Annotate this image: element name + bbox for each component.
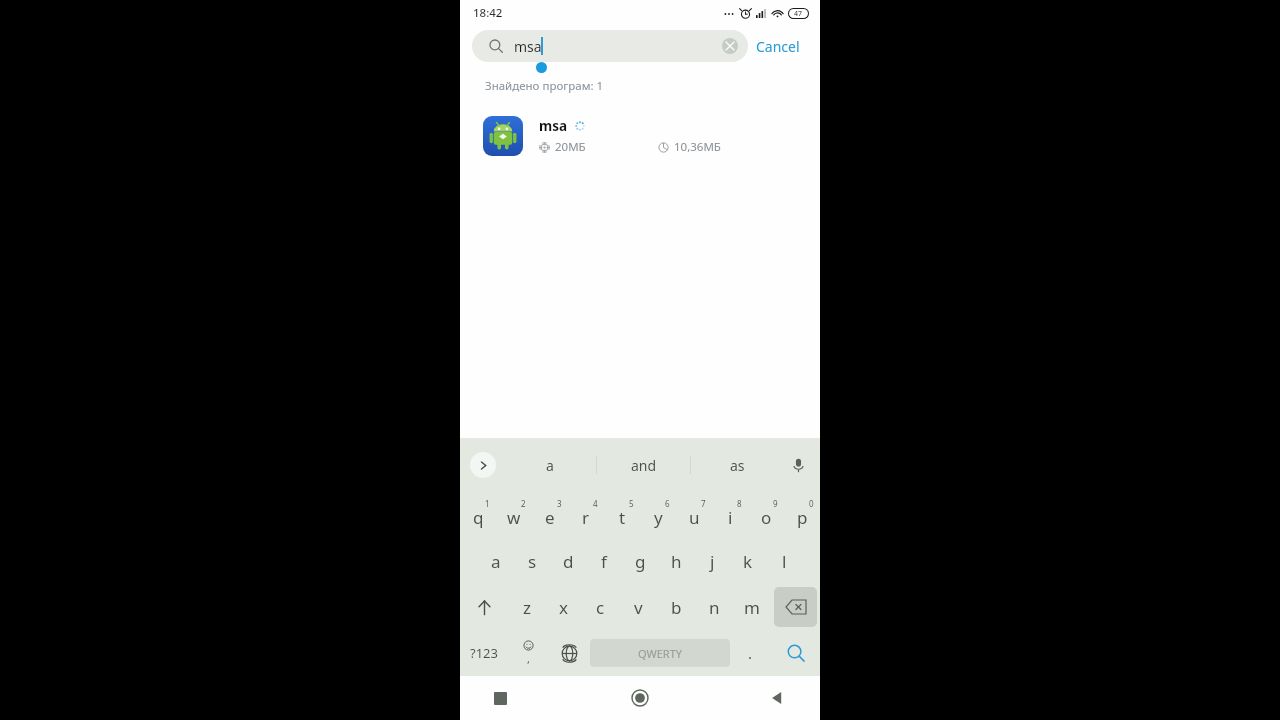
button[interactable]: c bbox=[582, 584, 619, 630]
staticText: a bbox=[491, 550, 501, 573]
button[interactable]: l bbox=[766, 538, 802, 584]
staticText: as bbox=[730, 456, 745, 475]
button[interactable]: msa bbox=[472, 30, 748, 62]
staticText: q bbox=[473, 506, 484, 529]
staticText: 10,36МБ bbox=[674, 139, 721, 155]
staticText: d bbox=[563, 550, 574, 573]
staticText: ?123 bbox=[470, 644, 498, 662]
button[interactable]: g bbox=[622, 538, 658, 584]
staticText: u bbox=[689, 506, 700, 529]
staticText: c bbox=[596, 596, 605, 619]
staticText: f bbox=[601, 550, 607, 573]
staticText: Cancel bbox=[756, 37, 800, 56]
staticText: and bbox=[631, 456, 657, 475]
button[interactable]: k bbox=[730, 538, 766, 584]
staticText: msa bbox=[539, 117, 568, 135]
staticText: a bbox=[546, 456, 554, 475]
staticText: x bbox=[559, 596, 568, 619]
button[interactable]: o bbox=[748, 492, 784, 538]
staticText: 9 bbox=[773, 498, 778, 509]
staticText: 7 bbox=[701, 498, 706, 509]
staticText: 6 bbox=[665, 498, 670, 509]
button[interactable]: . bbox=[730, 630, 771, 676]
button[interactable]: q bbox=[460, 492, 496, 538]
button[interactable]: Home bbox=[580, 676, 700, 720]
button[interactable]: Change language bbox=[549, 630, 590, 676]
button[interactable]: f bbox=[586, 538, 622, 584]
staticText: 18:42 bbox=[473, 5, 503, 21]
staticText: . bbox=[748, 643, 753, 663]
staticText: Знайдено програм: 1 bbox=[485, 78, 604, 94]
button[interactable]: Backspace bbox=[774, 587, 817, 627]
button[interactable]: Clear search bbox=[722, 38, 738, 54]
button[interactable]: n bbox=[695, 584, 733, 630]
staticText: 8 bbox=[737, 498, 742, 509]
button[interactable]: a bbox=[478, 538, 514, 584]
staticText: e bbox=[545, 506, 555, 529]
button[interactable]: s bbox=[514, 538, 550, 584]
staticText: 4 bbox=[593, 498, 598, 509]
staticText: 47 bbox=[794, 9, 803, 18]
button[interactable]: j bbox=[694, 538, 730, 584]
button[interactable]: msa bbox=[460, 110, 820, 162]
staticText: QWERTY bbox=[638, 646, 683, 661]
staticText: r bbox=[582, 506, 590, 529]
staticText: 2 bbox=[521, 498, 526, 509]
staticText: g bbox=[635, 550, 646, 573]
staticText: m bbox=[744, 596, 760, 619]
button[interactable]: y bbox=[640, 492, 676, 538]
button[interactable]: a bbox=[504, 438, 596, 492]
button[interactable]: Emoji bbox=[508, 630, 549, 676]
staticText: t bbox=[619, 506, 626, 529]
staticText: j bbox=[710, 550, 715, 573]
button[interactable]: Back bbox=[700, 676, 820, 720]
button[interactable]: r bbox=[568, 492, 604, 538]
button[interactable]: Cancel bbox=[748, 31, 808, 62]
button[interactable]: u bbox=[676, 492, 712, 538]
staticText: 20МБ bbox=[555, 139, 586, 155]
button[interactable]: Voice input bbox=[786, 453, 810, 477]
staticText: i bbox=[728, 506, 733, 529]
staticText: , bbox=[527, 651, 530, 666]
staticText: 3 bbox=[557, 498, 562, 509]
button[interactable]: Recent apps bbox=[460, 676, 580, 720]
staticText: h bbox=[671, 550, 682, 573]
button[interactable]: h bbox=[658, 538, 694, 584]
button[interactable]: p bbox=[784, 492, 820, 538]
button[interactable]: More suggestions bbox=[470, 452, 496, 478]
button[interactable]: t bbox=[604, 492, 640, 538]
staticText: n bbox=[709, 596, 720, 619]
button[interactable]: e bbox=[532, 492, 568, 538]
button[interactable]: b bbox=[657, 584, 695, 630]
button[interactable]: x bbox=[545, 584, 582, 630]
button[interactable]: ?123 bbox=[460, 630, 508, 676]
staticText: l bbox=[782, 550, 787, 573]
button[interactable]: QWERTY bbox=[590, 639, 730, 667]
button[interactable]: d bbox=[550, 538, 586, 584]
staticText: msa bbox=[514, 37, 542, 56]
button[interactable]: i bbox=[712, 492, 748, 538]
button[interactable]: v bbox=[619, 584, 657, 630]
staticText: y bbox=[654, 506, 663, 529]
staticText: z bbox=[523, 596, 531, 619]
staticText: s bbox=[528, 550, 537, 573]
button[interactable]: and bbox=[597, 438, 690, 492]
staticText: o bbox=[761, 506, 772, 529]
button[interactable]: Search bbox=[771, 630, 820, 676]
button[interactable]: m bbox=[733, 584, 771, 630]
staticText: 5 bbox=[629, 498, 634, 509]
staticText: 0 bbox=[809, 498, 814, 509]
staticText: p bbox=[797, 506, 808, 529]
button[interactable]: w bbox=[496, 492, 532, 538]
button[interactable]: as bbox=[691, 438, 784, 492]
staticText: 1 bbox=[485, 498, 490, 509]
button[interactable]: Shift bbox=[460, 584, 508, 630]
staticText: b bbox=[671, 596, 682, 619]
staticText: k bbox=[743, 550, 753, 573]
button[interactable]: z bbox=[508, 584, 545, 630]
staticText: w bbox=[507, 506, 521, 529]
staticText: v bbox=[634, 596, 643, 619]
